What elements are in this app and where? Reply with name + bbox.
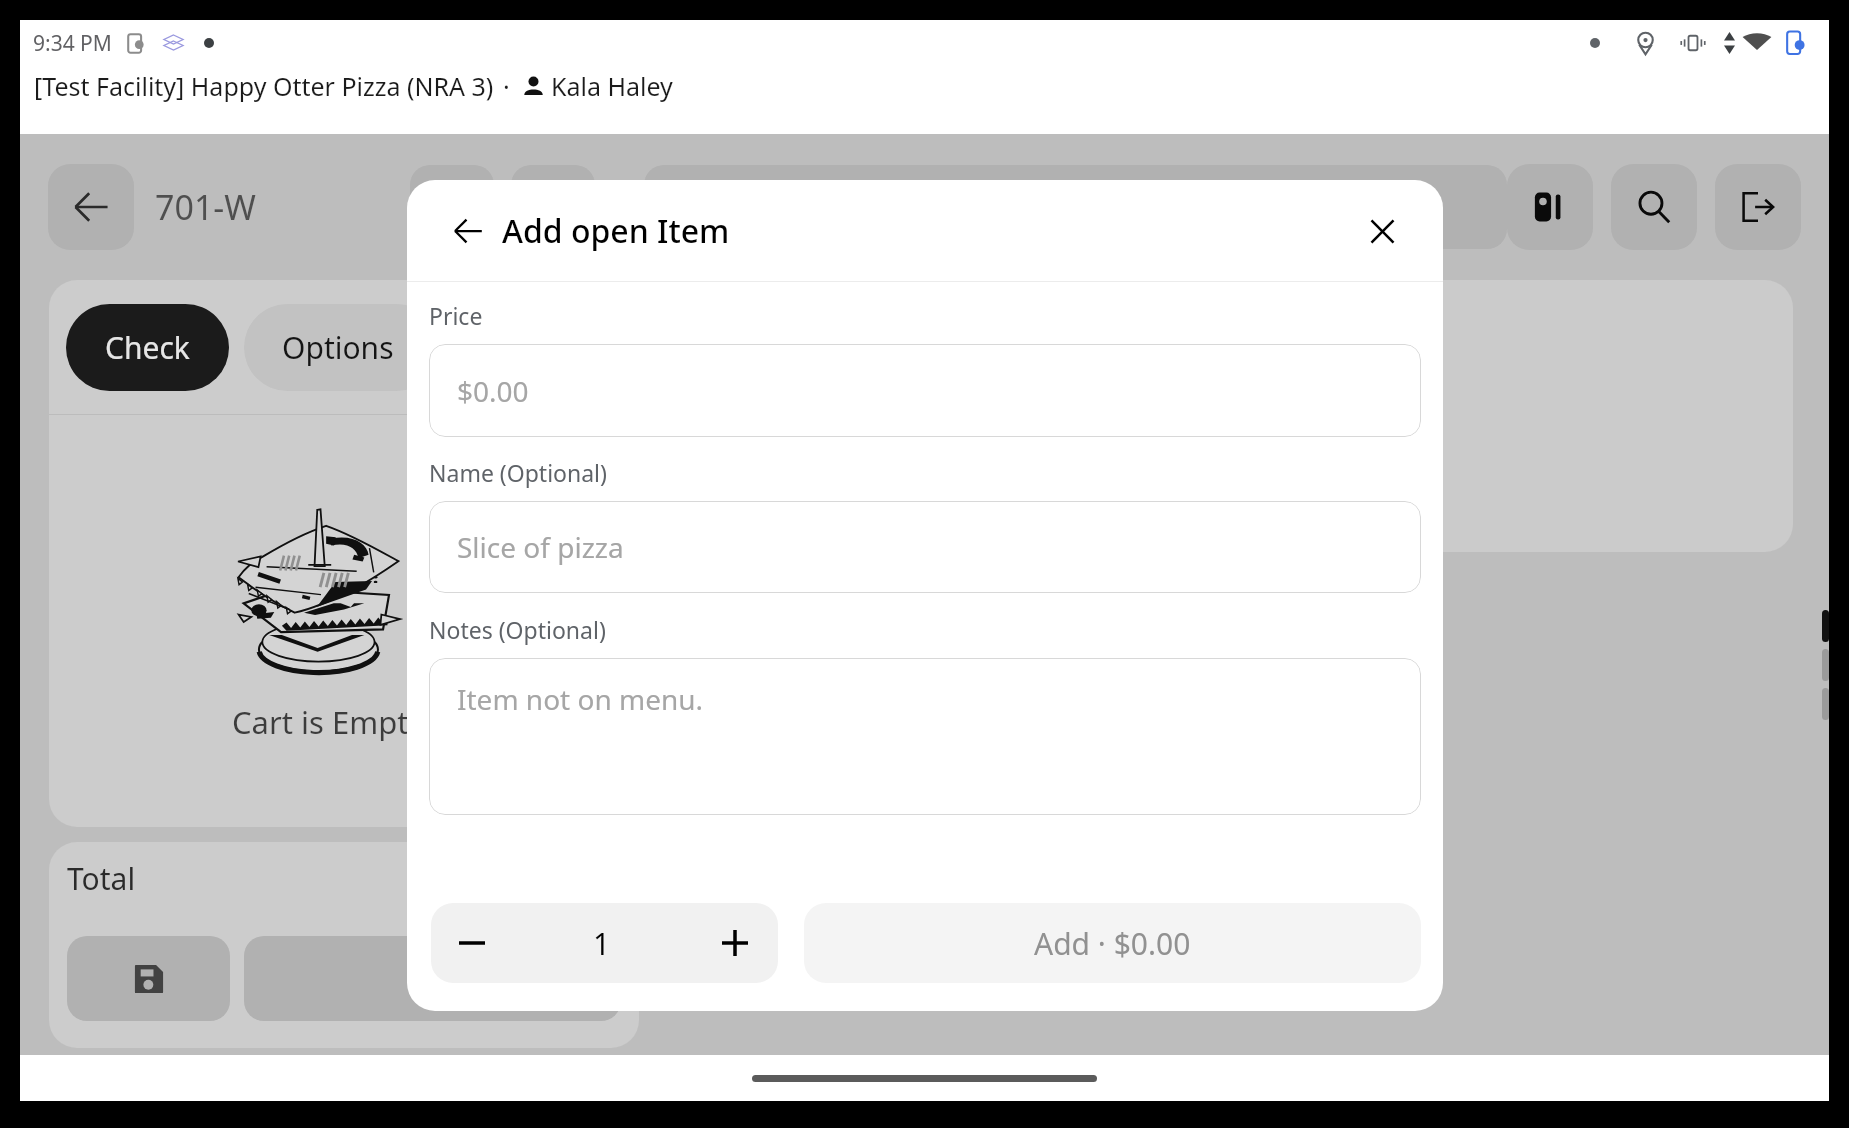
staticText: 9:34 PM [33,29,112,58]
button[interactable]: Save [67,936,230,1021]
button[interactable]: Check [66,304,229,391]
staticText: Cart is Empty [232,701,425,743]
button[interactable]: Search [1611,164,1697,250]
staticText: Price [429,300,483,331]
button[interactable]: Slice of pizza [429,501,1421,593]
staticText: Notes (Optional) [429,614,606,645]
staticText: Options [282,327,394,368]
button[interactable]: Back [48,164,134,250]
staticText: Add open Item [502,209,730,253]
button[interactable]: Log out [1715,164,1801,250]
button[interactable]: Increase quantity [691,903,778,983]
button[interactable]: Item not on menu. [429,658,1421,815]
button[interactable]: Devices [1507,164,1593,250]
staticText: Total [67,858,136,899]
button[interactable]: Close [1360,209,1404,253]
staticText: Pay [407,958,458,999]
staticText: Name (Optional) [429,457,607,488]
staticText: Kala Haley [551,69,673,103]
staticText: Add · $0.00 [1034,923,1191,964]
button[interactable]: Filter [410,165,494,249]
button[interactable]: Decrease quantity [431,903,512,983]
staticText: Slice of pizza [457,528,624,566]
staticText: Check [105,327,190,368]
button[interactable]: Add · $0.00 [804,903,1421,983]
staticText: · [503,69,510,103]
button[interactable]: Sort [511,165,595,249]
button[interactable]: Search field [644,165,1507,249]
button[interactable]: Pay [244,936,621,1021]
button[interactable]: Back [453,209,497,253]
button[interactable]: Options [244,304,440,391]
staticText: $0.00 [457,372,529,410]
staticText: [Test Facility] Happy Otter Pizza (NRA 3… [34,69,494,103]
button[interactable]: $0.00 [429,344,1421,437]
staticText: Item not on menu. [457,680,704,718]
button[interactable]: Dismiss dialog [20,134,1829,1055]
staticText: 1 [593,923,611,964]
staticText: 701-W [155,184,256,230]
